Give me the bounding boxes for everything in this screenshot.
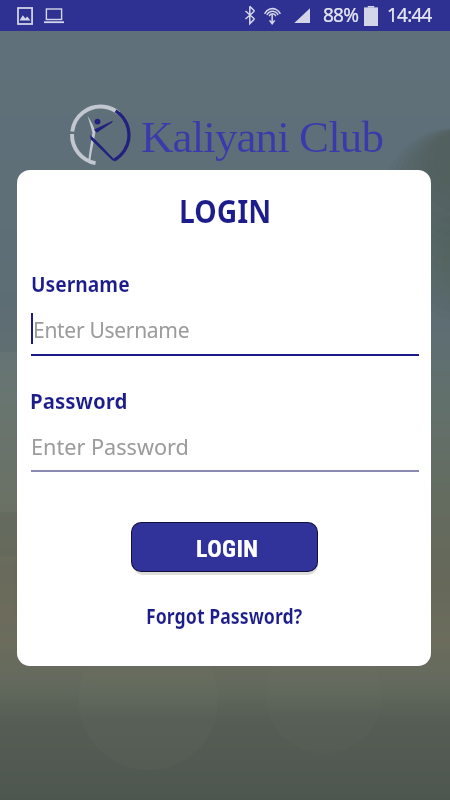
button[interactable]: Enter Password [31, 425, 419, 474]
staticText: Kaliyani Club [141, 112, 384, 162]
staticText: Enter Username [33, 316, 190, 345]
staticText: LOGIN [196, 535, 259, 563]
button[interactable]: Enter Username [31, 308, 419, 357]
button[interactable]: Forgot Password? [140, 599, 337, 634]
other: Connected device [44, 9, 64, 24]
staticText: LOGIN [179, 189, 272, 233]
staticText: Forgot Password? [146, 602, 302, 631]
staticText: Enter Password [31, 433, 190, 462]
other: Screenshot captured [18, 8, 34, 24]
button[interactable]: LOGIN [131, 522, 318, 572]
staticText: 14:44 [387, 2, 432, 28]
staticText: 88% [323, 2, 359, 28]
staticText: Username [31, 268, 130, 298]
staticText: Password [30, 385, 128, 415]
